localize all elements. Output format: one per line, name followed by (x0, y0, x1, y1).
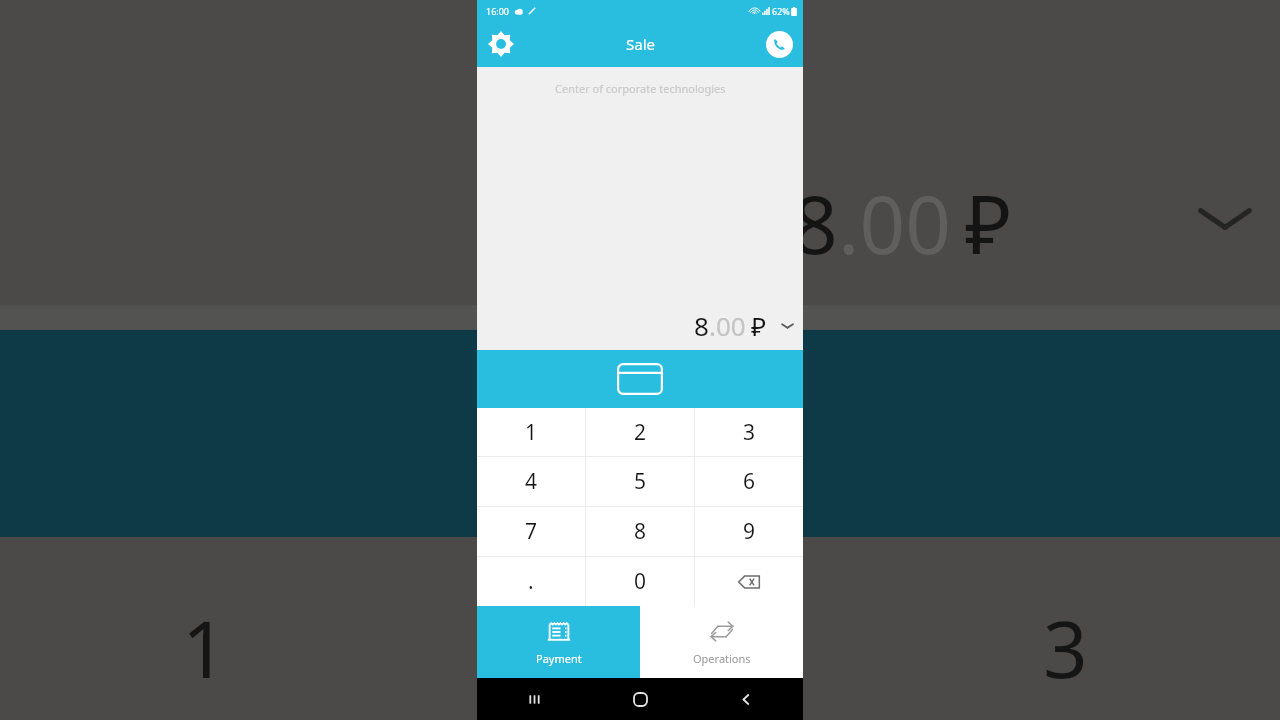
staticText: 1 (525, 418, 538, 447)
button[interactable]: Call (755, 21, 803, 67)
staticText: ₽ (751, 308, 767, 343)
staticText: 8 (634, 517, 647, 546)
staticText: 3 (1043, 595, 1088, 701)
button[interactable]: Backspace (695, 557, 803, 606)
staticText: 0 (634, 567, 647, 596)
button[interactable]: Payment (477, 606, 640, 678)
staticText: 2 (634, 418, 647, 447)
button[interactable]: 5 (586, 457, 694, 506)
button[interactable]: 7 (477, 507, 585, 556)
staticText: 1 (182, 595, 227, 701)
button[interactable]: Expand amount (775, 314, 799, 338)
button[interactable]: 3 (695, 408, 803, 456)
button[interactable]: Settings (477, 21, 525, 67)
button[interactable]: Pay by card (477, 350, 803, 408)
button[interactable]: Operations (640, 606, 803, 678)
staticText: 8 (694, 308, 709, 343)
staticText: ₽ (965, 168, 1012, 277)
button[interactable]: 2 (586, 408, 694, 456)
button[interactable]: 1 (477, 408, 585, 456)
staticText: Operations (693, 651, 751, 666)
staticText: 16:00 (486, 5, 510, 17)
button[interactable]: 4 (477, 457, 585, 506)
staticText: . (528, 567, 534, 596)
staticText: 5 (634, 467, 647, 496)
staticText: 8 (792, 168, 838, 277)
staticText: 9 (743, 517, 756, 546)
staticText: 6 (743, 467, 756, 496)
button[interactable]: Recents (523, 688, 545, 710)
staticText: 62% (772, 5, 790, 17)
button[interactable]: 0 (586, 557, 694, 606)
staticText: 3 (743, 418, 756, 447)
button[interactable]: 6 (695, 457, 803, 506)
button[interactable]: . (477, 557, 585, 606)
staticText: Center of corporate technologies (555, 81, 726, 96)
button[interactable]: Home (629, 688, 651, 710)
button[interactable]: Back (735, 688, 757, 710)
staticText: 4 (525, 467, 538, 496)
staticText: 7 (525, 517, 538, 546)
button[interactable]: 9 (695, 507, 803, 556)
staticText: .00 (838, 168, 951, 277)
button[interactable]: 8 (586, 507, 694, 556)
staticText: .00 (709, 308, 746, 343)
staticText: Sale (626, 34, 655, 54)
staticText: Payment (536, 651, 582, 666)
